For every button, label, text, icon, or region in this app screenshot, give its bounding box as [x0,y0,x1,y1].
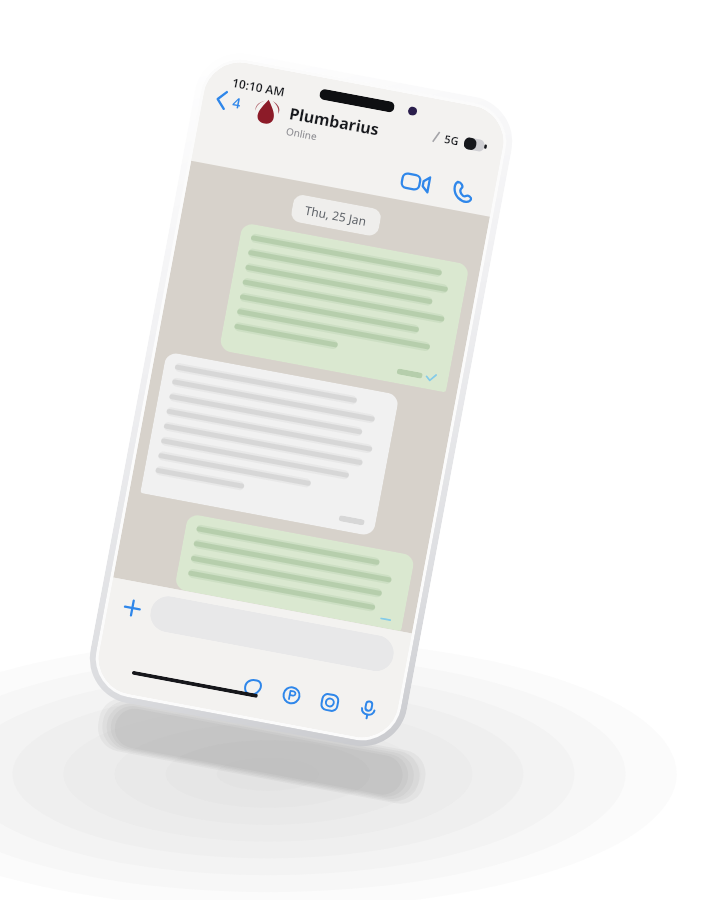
button[interactable]: Voice call [443,172,481,210]
button[interactable]: Payment [276,680,307,710]
staticText: Plumbarius [288,102,381,141]
button[interactable] [219,222,470,392]
staticText: 10:10 AM [231,74,287,100]
button[interactable] [140,351,399,537]
button[interactable]: Voice message [353,694,383,725]
button[interactable] [174,513,415,631]
button[interactable]: Camera [315,687,345,718]
button[interactable]: Sticker [238,673,268,703]
button[interactable]: Add attachment [116,591,148,624]
staticText: 4 [231,92,243,113]
staticText: Thu, 25 Jan [304,202,368,229]
button[interactable] [147,593,397,674]
button[interactable]: Video call [396,164,434,201]
staticText: 5G [443,131,461,149]
staticText: Online [285,124,318,143]
button[interactable]: Back, 4 unread [211,86,248,116]
